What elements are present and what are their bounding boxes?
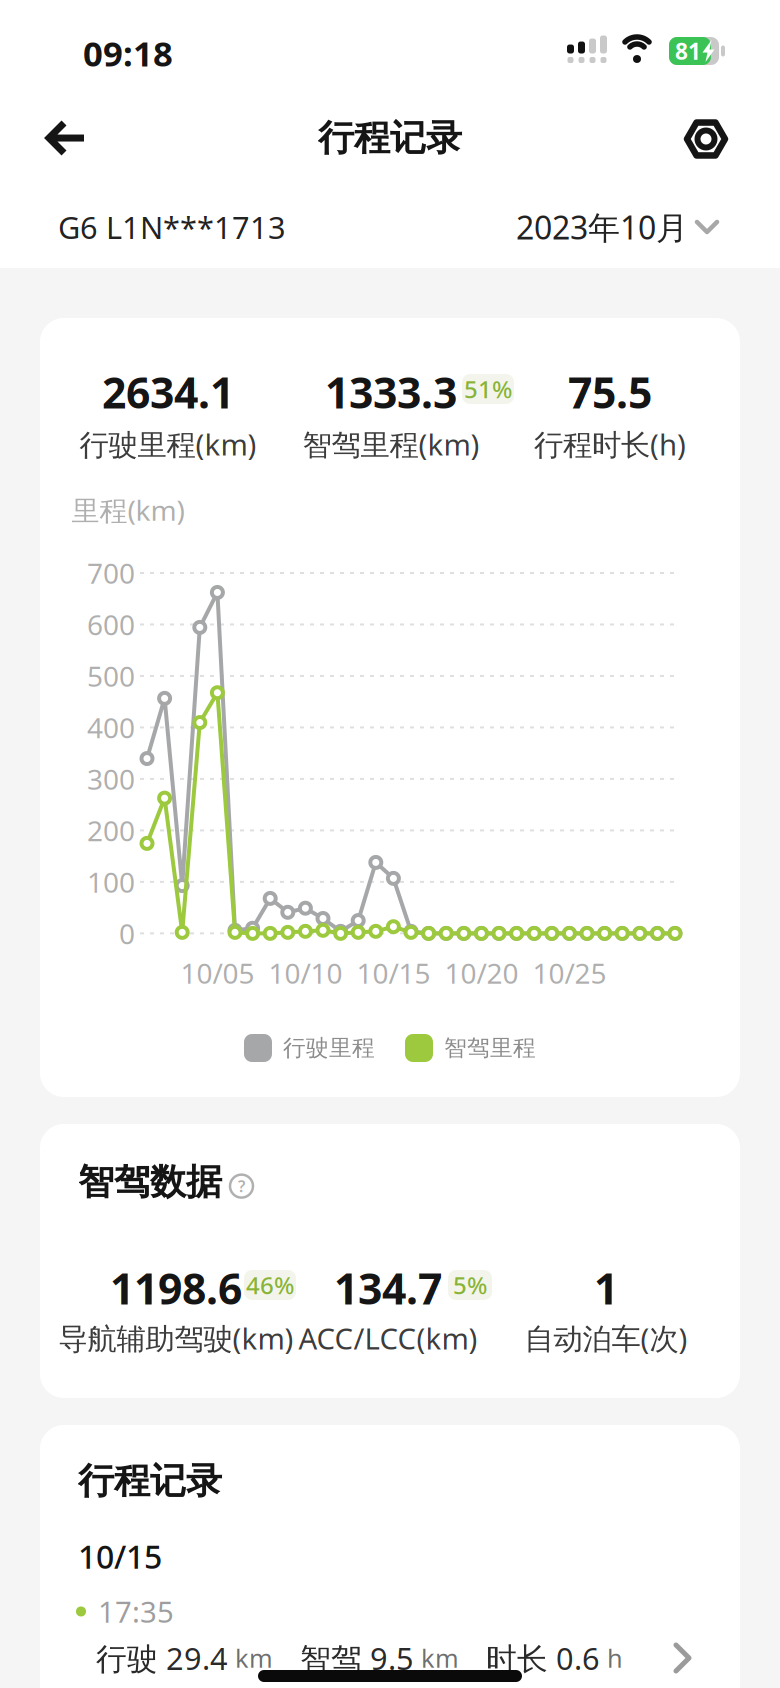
staticText: G6 L1N***1713 [58,207,286,247]
staticText: 行驶 29.4 [96,1638,228,1678]
button[interactable] [34,110,94,166]
staticText: 导航辅助驾驶(km) [58,1318,293,1357]
staticText: 行驶里程 [283,1034,375,1062]
button[interactable]: 行驶 29.4 [40,1628,740,1688]
staticText: km [228,1641,273,1675]
staticText: 700 [87,554,135,592]
staticText: 134.7 [334,1260,442,1316]
staticText: 10/15 [78,1535,162,1577]
staticText: 1 [594,1260,618,1316]
staticText: 600 [87,606,135,643]
button[interactable] [678,113,734,165]
staticText: 51% [464,373,512,405]
staticText: 智驾里程(km) [302,424,479,463]
button[interactable]: 2023年10月 [516,206,718,248]
staticText: 10/25 [532,954,606,992]
staticText: 时长 0.6 [459,1638,600,1678]
staticText: 0 [119,915,135,952]
staticText: 300 [87,760,135,797]
staticText: ACC/LCC(km) [298,1318,477,1357]
staticText: km [414,1641,459,1675]
staticText: 行程记录 [78,1459,222,1503]
staticText: 行驶里程(km) [79,424,256,463]
staticText: 400 [87,709,135,746]
staticText: 200 [87,812,135,849]
staticText: 100 [87,863,135,900]
staticText: 75.5 [568,364,652,420]
staticText: 46% [246,1269,294,1301]
staticText: 10/10 [268,954,342,992]
staticText: 智驾里程 [444,1034,536,1062]
staticText: 2023年10月 [516,206,688,248]
staticText: 500 [87,657,135,695]
staticText: 行程时长(h) [534,424,686,463]
staticText: 09:18 [83,30,173,76]
staticText: 5% [453,1269,487,1301]
staticText: 10/20 [444,954,518,992]
staticText: 17:35 [98,1592,174,1631]
staticText: 智驾 9.5 [273,1638,414,1678]
staticText: 里程(km) [71,491,184,529]
staticText: h [600,1641,623,1675]
staticText: 行程记录 [318,116,462,160]
staticText: 智驾数据 [78,1160,222,1204]
staticText: 1333.3 [325,364,457,420]
staticText: 1198.6 [110,1260,242,1316]
staticText: ? [238,1175,245,1197]
staticText: 10/05 [180,954,254,992]
staticText: 10/15 [356,954,430,992]
staticText: 81 [675,36,701,66]
staticText: 自动泊车(次) [524,1318,687,1357]
staticText: 2634.1 [102,364,234,420]
